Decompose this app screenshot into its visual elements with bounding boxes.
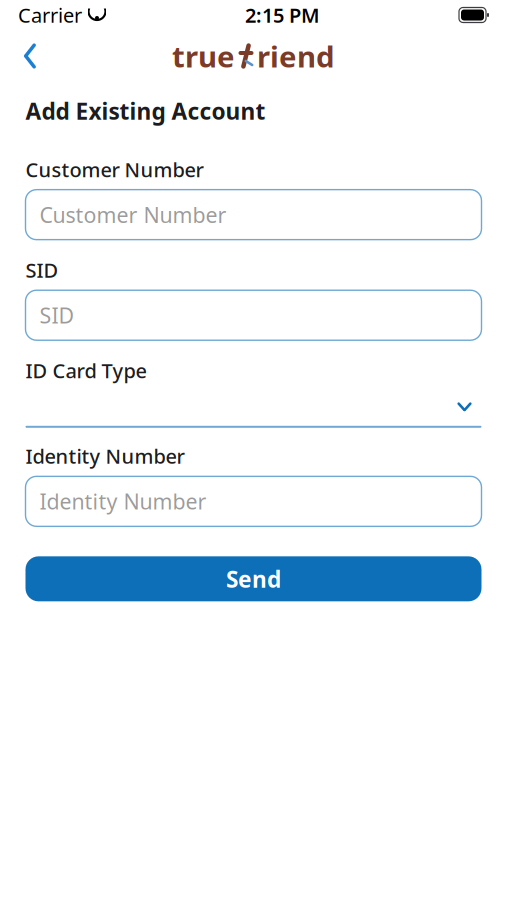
button[interactable]: SID bbox=[25, 290, 481, 340]
button[interactable]: Back bbox=[8, 34, 52, 78]
staticText: Add Existing Account bbox=[25, 96, 265, 126]
staticText: true bbox=[172, 36, 235, 75]
button[interactable]: Send bbox=[25, 556, 481, 601]
staticText: 2:15 PM bbox=[245, 2, 320, 28]
staticText: Customer Number bbox=[25, 156, 203, 183]
staticText: Identity Number bbox=[25, 443, 184, 469]
button[interactable]: Identity Number bbox=[25, 476, 481, 526]
button[interactable]: ID Card Type bbox=[25, 388, 481, 428]
button[interactable]: Customer Number bbox=[25, 190, 481, 240]
staticText: Send bbox=[226, 564, 281, 594]
staticText: Identity Number bbox=[39, 487, 206, 515]
staticText: SID bbox=[39, 301, 74, 329]
staticText: Customer Number bbox=[39, 200, 226, 229]
staticText: SID bbox=[25, 257, 58, 283]
staticText: ID Card Type bbox=[25, 357, 146, 384]
staticText: riend bbox=[257, 36, 335, 75]
staticText: Carrier bbox=[18, 2, 82, 28]
